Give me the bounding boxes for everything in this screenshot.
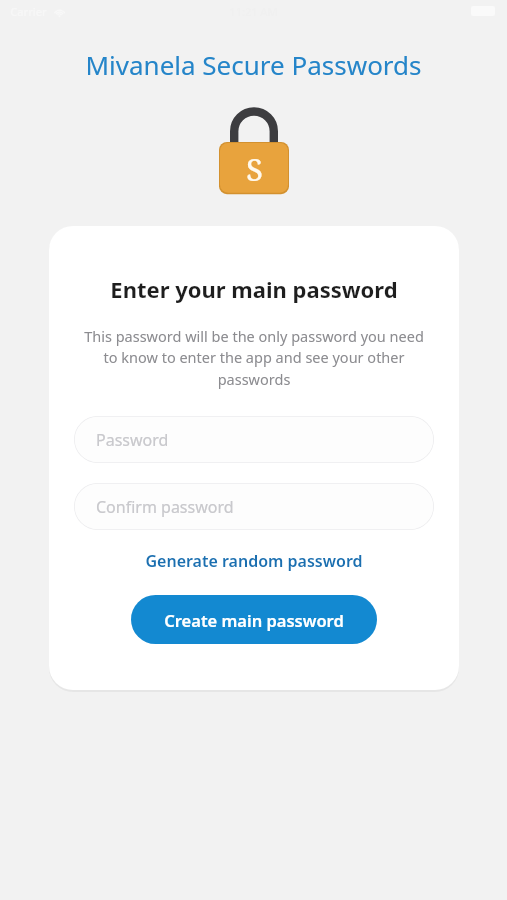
staticText: Create main password (164, 609, 344, 631)
staticText: Mivanela Secure Passwords (0, 47, 507, 82)
staticText: This password will be the only password … (77, 326, 431, 390)
staticText: Confirm password (96, 496, 234, 518)
other: Secure lock logo (214, 103, 294, 197)
button[interactable]: Confirm password (74, 483, 434, 530)
staticText: Generate random password (145, 550, 363, 572)
staticText: S (246, 149, 263, 190)
button[interactable]: Password (74, 416, 434, 463)
button[interactable]: Create main password (131, 595, 377, 644)
staticText: Enter your main password (49, 274, 459, 304)
staticText: Password (96, 429, 169, 451)
button[interactable]: Generate random password (137, 546, 371, 576)
